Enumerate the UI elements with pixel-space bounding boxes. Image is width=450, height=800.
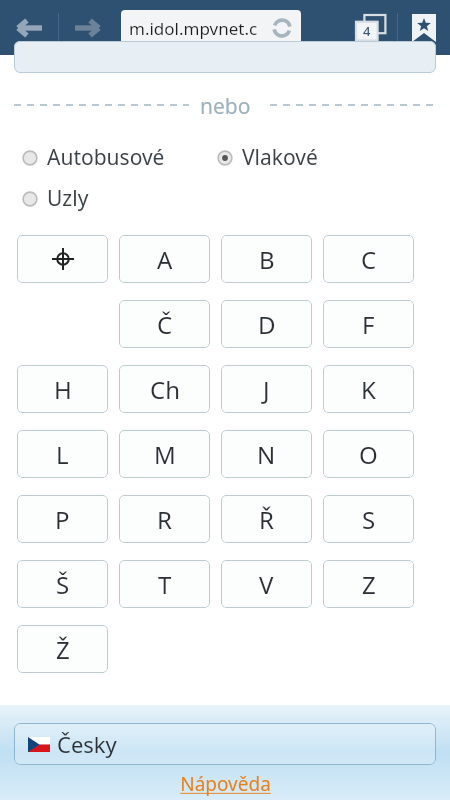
button[interactable]: Forward [59, 0, 117, 55]
button[interactable]: R [119, 495, 210, 543]
staticText: Vlakové [242, 143, 318, 172]
button[interactable]: D [221, 300, 312, 348]
button[interactable]: Ř [221, 495, 312, 543]
staticText: K [361, 373, 376, 406]
button[interactable]: Back [0, 0, 58, 55]
button[interactable]: J [221, 365, 312, 413]
button[interactable]: T [119, 560, 210, 608]
button[interactable]: V [221, 560, 312, 608]
staticText: A [157, 243, 173, 276]
button[interactable]: Autobusové [22, 143, 165, 172]
staticText: Uzly [47, 184, 89, 213]
button[interactable]: N [221, 430, 312, 478]
button[interactable]: K [323, 365, 414, 413]
button[interactable]: Bookmarks [398, 0, 450, 55]
button[interactable]: M [119, 430, 210, 478]
button[interactable]: H [17, 365, 108, 413]
button[interactable]: O [323, 430, 414, 478]
staticText: Česky [57, 729, 117, 759]
button[interactable]: L [17, 430, 108, 478]
staticText: S [362, 503, 376, 536]
button[interactable]: Uzly [22, 184, 89, 213]
button[interactable]: Č [119, 300, 210, 348]
staticText: L [56, 438, 69, 471]
button[interactable]: Š [17, 560, 108, 608]
staticText: V [259, 568, 274, 601]
button[interactable]: m.idol.mpvnet.c [121, 10, 301, 46]
button[interactable]: S [323, 495, 414, 543]
staticText: C [361, 243, 377, 276]
staticText: H [54, 373, 72, 406]
button[interactable]: Use my location [17, 235, 108, 283]
staticText: J [263, 373, 270, 406]
button[interactable]: F [323, 300, 414, 348]
button[interactable]: Nápověda [180, 771, 271, 797]
staticText: Autobusové [47, 143, 165, 172]
button[interactable]: Česky [14, 723, 436, 765]
staticText: m.idol.mpvnet.c [129, 17, 258, 40]
staticText: F [362, 308, 375, 341]
staticText: B [259, 243, 275, 276]
staticText: T [158, 568, 172, 601]
staticText: Z [362, 568, 376, 601]
staticText: O [359, 438, 378, 471]
staticText: Š [56, 568, 70, 601]
staticText: Č [157, 308, 173, 341]
button[interactable]: B [221, 235, 312, 283]
staticText: N [257, 438, 276, 471]
button[interactable]: Ch [119, 365, 210, 413]
button[interactable]: Z [323, 560, 414, 608]
staticText: 4 [363, 22, 371, 40]
button[interactable]: C [323, 235, 414, 283]
staticText: nebo [200, 92, 251, 118]
staticText: Ř [259, 503, 274, 536]
staticText: R [157, 503, 172, 536]
button[interactable]: A [119, 235, 210, 283]
staticText: P [55, 503, 70, 536]
staticText: Ch [150, 373, 180, 406]
button[interactable]: Tabs, 4 open [345, 0, 397, 55]
button[interactable]: Ž [17, 625, 108, 673]
button[interactable] [14, 41, 436, 73]
staticText: Ž [56, 633, 70, 666]
staticText: D [258, 308, 276, 341]
staticText: M [154, 438, 176, 471]
button[interactable]: P [17, 495, 108, 543]
button[interactable]: Vlakové [217, 143, 318, 172]
